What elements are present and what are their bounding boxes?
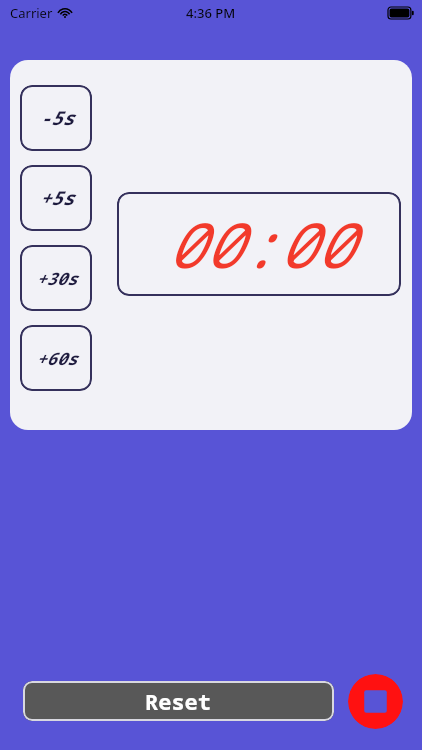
staticText: -5s	[39, 105, 74, 131]
button[interactable]: 00:00	[117, 192, 401, 296]
staticText: +30s	[36, 267, 77, 290]
staticText: 00:00	[166, 202, 353, 286]
staticText: +60s	[36, 347, 77, 370]
staticText: 4:36 PM	[186, 4, 236, 22]
staticText: Reset	[145, 686, 212, 716]
button[interactable]: Reset	[23, 681, 334, 721]
button[interactable]: +5s	[20, 165, 92, 231]
button[interactable]: +30s	[20, 245, 92, 311]
staticText: +5s	[39, 185, 74, 211]
staticText: Carrier	[10, 4, 53, 22]
button[interactable]: +60s	[20, 325, 92, 391]
button[interactable]: Stop	[348, 674, 403, 729]
button[interactable]: -5s	[20, 85, 92, 151]
